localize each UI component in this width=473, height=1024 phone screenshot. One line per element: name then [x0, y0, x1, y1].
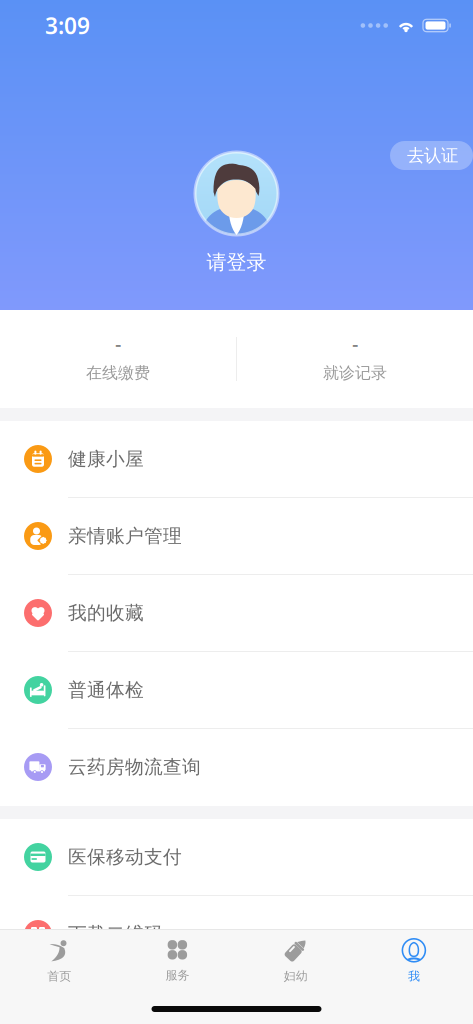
staticText: 首页 — [47, 969, 71, 983]
staticText: 3:09 — [45, 10, 90, 40]
button[interactable]: 首页 — [0, 930, 118, 992]
button[interactable]: 我的收藏 — [0, 575, 473, 652]
staticText: - — [115, 331, 121, 357]
button[interactable]: 下载二维码 — [0, 896, 473, 973]
staticText: 服务 — [165, 968, 189, 982]
staticText: 医保移动支付 — [68, 845, 182, 868]
staticText: - — [352, 331, 358, 357]
staticText: 下载二维码 — [68, 922, 163, 945]
button[interactable]: 我 — [355, 930, 473, 992]
button[interactable]: - — [237, 310, 473, 408]
button[interactable]: 妇幼 — [236, 930, 355, 992]
staticText: 健康小屋 — [68, 447, 144, 470]
staticText: 我 — [408, 969, 420, 983]
button[interactable]: 去认证 — [390, 141, 473, 170]
button[interactable]: - — [0, 310, 236, 408]
staticText: 亲情账户管理 — [68, 524, 182, 547]
button[interactable]: 服务 — [118, 930, 236, 992]
button[interactable]: 健康小屋 — [0, 421, 473, 498]
staticText: 普通体检 — [68, 678, 144, 701]
staticText: 我的收藏 — [68, 601, 144, 624]
staticText: 请登录 — [206, 250, 266, 275]
staticText: 在线缴费 — [86, 363, 150, 383]
button[interactable]: 云药房物流查询 — [0, 729, 473, 806]
staticText: 妇幼 — [284, 969, 308, 983]
button[interactable]: 医保移动支付 — [0, 819, 473, 896]
button[interactable]: 普通体检 — [0, 652, 473, 729]
staticText: 就诊记录 — [323, 363, 387, 383]
staticText: 云药房物流查询 — [68, 755, 201, 778]
staticText: 去认证 — [407, 145, 458, 166]
button[interactable]: 亲情账户管理 — [0, 498, 473, 575]
